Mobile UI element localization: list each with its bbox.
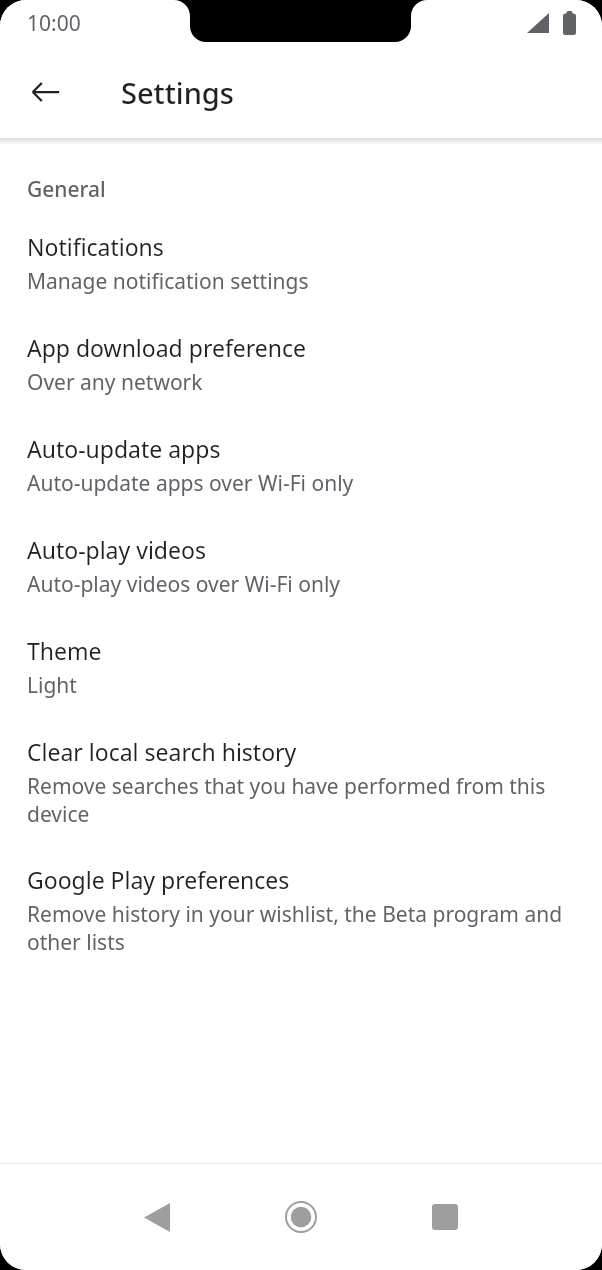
- button[interactable]: Theme: [0, 617, 602, 718]
- staticText: Remove history in your wishlist, the Bet…: [27, 900, 572, 956]
- button[interactable]: Google Play preferences: [0, 846, 602, 974]
- staticText: Auto-play videos: [27, 534, 206, 565]
- button[interactable]: Back: [22, 68, 70, 116]
- button[interactable]: Auto-play videos: [0, 516, 602, 617]
- staticText: Settings: [121, 73, 234, 112]
- button[interactable]: Home: [253, 1169, 349, 1265]
- staticText: Auto-play videos over Wi-Fi only: [27, 570, 341, 599]
- button[interactable]: Clear local search history: [0, 718, 602, 846]
- staticText: 10:00: [27, 9, 81, 38]
- staticText: Theme: [27, 635, 102, 666]
- staticText: General: [27, 175, 106, 204]
- button[interactable]: Notifications: [0, 213, 602, 314]
- button[interactable]: Recent apps: [397, 1169, 493, 1265]
- staticText: Clear local search history: [27, 736, 297, 767]
- staticText: Notifications: [27, 231, 164, 262]
- button[interactable]: Auto-update apps: [0, 415, 602, 516]
- staticText: Auto-update apps: [27, 433, 221, 464]
- button[interactable]: App download preference: [0, 314, 602, 415]
- staticText: Light: [27, 671, 77, 700]
- staticText: Over any network: [27, 368, 203, 397]
- staticText: Manage notification settings: [27, 267, 309, 296]
- staticText: Remove searches that you have performed …: [27, 772, 572, 828]
- staticText: Auto-update apps over Wi-Fi only: [27, 469, 354, 498]
- button[interactable]: Back: [109, 1169, 205, 1265]
- staticText: App download preference: [27, 332, 307, 363]
- staticText: Google Play preferences: [27, 864, 290, 895]
